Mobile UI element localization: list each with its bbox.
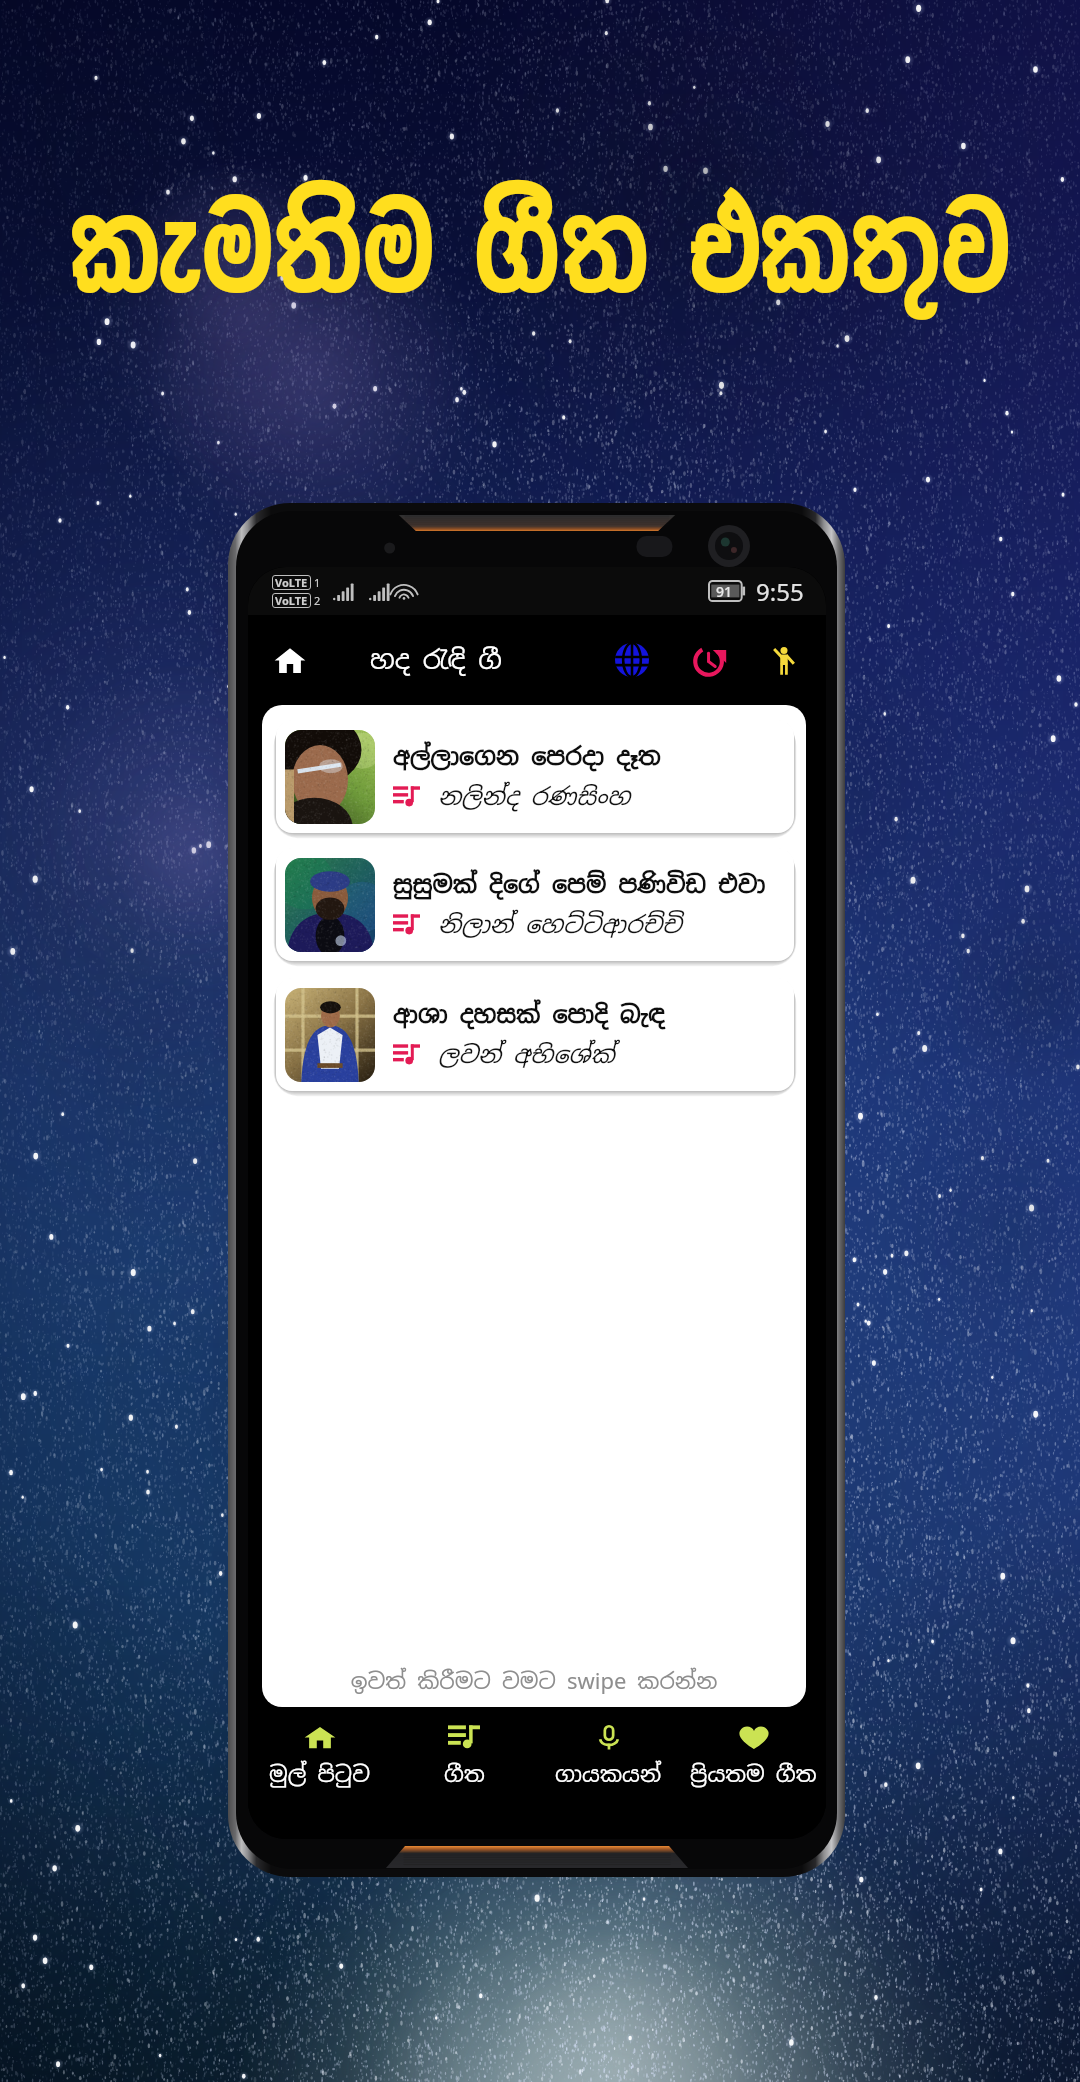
button[interactable]: ගායකයන් <box>536 1707 681 1839</box>
staticText: ඉවත් කිරීමට වමට swipe කරන්න <box>262 1667 806 1696</box>
staticText: ප්‍රියතම ගීත <box>690 1760 817 1789</box>
button[interactable]: Artist <box>762 638 806 682</box>
button[interactable]: Language <box>608 636 656 684</box>
staticText: හද රැඳි ගී <box>370 643 502 677</box>
staticText: මුල් පිටුව <box>269 1760 371 1789</box>
button[interactable]: සුසුමක් දිගේ පෙම් පණිවිඩ එවා <box>276 848 794 961</box>
staticText: නලින්ද රණසිංහ <box>438 781 631 812</box>
button[interactable]: ආශා දහසක් පොදි බැඳ <box>276 978 794 1091</box>
button[interactable]: ගීත <box>392 1707 536 1839</box>
staticText: කැමතිම ගීත එකතුව <box>0 166 1080 344</box>
staticText: ගීත <box>444 1760 485 1789</box>
button[interactable]: අල්ලාගෙන පෙරදා දෑත <box>276 720 794 833</box>
staticText: VoLTE <box>275 575 308 590</box>
button[interactable]: Home <box>265 635 315 685</box>
staticText: අල්ලාගෙන පෙරදා දෑත <box>393 741 661 772</box>
staticText: 1 <box>314 575 321 590</box>
staticText: ගායකයන් <box>555 1760 662 1789</box>
button[interactable]: Refresh <box>686 636 734 684</box>
button[interactable]: ප්‍රියතම ගීත <box>681 1707 826 1839</box>
staticText: ලවන් අභිශේක් <box>438 1039 615 1070</box>
staticText: ආශා දහසක් පොදි බැඳ <box>393 999 665 1030</box>
button[interactable]: මුල් පිටුව <box>248 1707 392 1839</box>
staticText: 2 <box>314 593 321 608</box>
staticText: සුසුමක් දිගේ පෙම් පණිවිඩ එවා <box>393 869 766 900</box>
staticText: 91 <box>716 582 733 601</box>
staticText: VoLTE <box>275 593 308 608</box>
staticText: 9:55 <box>756 575 804 608</box>
staticText: නිලාන් හෙට්ටිආරච්චි <box>438 909 682 940</box>
